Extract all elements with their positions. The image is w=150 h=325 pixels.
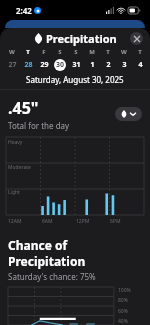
staticText: Total for the day: [8, 120, 70, 131]
staticText: T: [138, 48, 142, 56]
staticText: Saturday, August 30, 2025: [26, 74, 124, 85]
staticText: W: [121, 48, 127, 56]
button[interactable]: 2: [100, 58, 116, 71]
button[interactable]: Precipitation type: [115, 107, 142, 121]
staticText: S: [58, 48, 62, 56]
staticText: 60%: [118, 308, 128, 315]
staticText: 2:42: [16, 5, 32, 16]
staticText: Moderate: [8, 164, 31, 171]
staticText: 30: [56, 60, 65, 70]
staticText: 100%: [118, 287, 131, 294]
staticText: Precipitation: [46, 31, 117, 46]
button[interactable]: 30: [52, 58, 68, 71]
button[interactable]: 4: [132, 58, 148, 71]
staticText: M: [89, 48, 95, 56]
staticText: Heavy: [8, 139, 23, 146]
staticText: 80%: [118, 297, 128, 304]
button[interactable]: Close: [130, 32, 143, 45]
button[interactable]: 27: [4, 58, 20, 71]
staticText: 40%: [118, 318, 128, 325]
staticText: 27: [8, 60, 17, 70]
staticText: T: [106, 48, 110, 56]
button[interactable]: 1: [84, 58, 100, 71]
staticText: 31: [72, 60, 81, 70]
staticText: 6PM: [110, 218, 121, 225]
staticText: 12AM: [8, 218, 22, 225]
staticText: 3: [122, 60, 127, 70]
staticText: W: [9, 48, 15, 56]
staticText: S: [74, 48, 78, 56]
button[interactable]: 31: [68, 58, 84, 71]
staticText: T: [26, 48, 30, 56]
staticText: F: [42, 48, 46, 56]
staticText: 29: [40, 60, 49, 70]
button[interactable]: 3: [116, 58, 132, 71]
staticText: Light: [8, 189, 20, 196]
staticText: Saturday's chance: 75%: [8, 271, 96, 282]
staticText: 2: [106, 60, 111, 70]
staticText: 28: [24, 60, 33, 70]
staticText: 1: [90, 60, 95, 70]
staticText: 6AM: [42, 218, 53, 225]
staticText: .45": [8, 97, 39, 119]
button[interactable]: 29: [36, 58, 52, 71]
staticText: 4: [138, 60, 143, 70]
staticText: Chance of Precipitation: [8, 237, 142, 269]
button[interactable]: 28: [20, 58, 36, 71]
staticText: 12PM: [76, 218, 90, 225]
